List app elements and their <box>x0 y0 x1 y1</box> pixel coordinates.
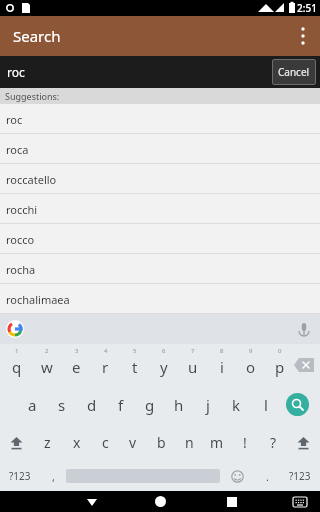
staticText: h <box>174 395 184 415</box>
button[interactable]: 1 <box>2 344 32 385</box>
staticText: g <box>145 395 155 415</box>
button[interactable]: d <box>77 385 106 424</box>
staticText: f <box>118 395 124 415</box>
button[interactable]: 6 <box>149 344 178 385</box>
button[interactable]: More options <box>286 16 320 56</box>
staticText: ! <box>243 433 247 452</box>
staticText: . <box>266 469 269 484</box>
staticText: 1 <box>15 347 19 355</box>
staticText: e <box>72 357 81 377</box>
button[interactable]: rocco <box>0 224 320 254</box>
button[interactable]: s <box>47 385 77 424</box>
button[interactable]: l <box>251 385 280 424</box>
staticText: 6 <box>162 347 166 355</box>
staticText: q <box>12 357 22 377</box>
staticText: r <box>102 357 109 377</box>
staticText: j <box>206 395 210 415</box>
button[interactable]: ?123 <box>280 461 320 491</box>
button[interactable]: 9 <box>236 344 265 385</box>
staticText: , <box>52 469 55 484</box>
button[interactable]: Shift <box>287 424 320 461</box>
staticText: ?123 <box>9 469 31 483</box>
staticText: i <box>220 357 224 377</box>
button[interactable]: 7 <box>178 344 207 385</box>
button[interactable]: 3 <box>62 344 91 385</box>
button[interactable]: rocha <box>0 254 320 284</box>
staticText: o <box>246 357 256 377</box>
staticText: y <box>160 357 168 377</box>
button[interactable]: roca <box>0 134 320 164</box>
button[interactable]: Backspace <box>291 354 317 376</box>
button[interactable]: 8 <box>207 344 236 385</box>
staticText: s <box>58 395 66 415</box>
staticText: rochalimaea <box>6 292 70 307</box>
staticText: Suggestions: <box>5 90 60 102</box>
button[interactable]: 5 <box>120 344 149 385</box>
staticText: z <box>44 433 51 452</box>
staticText: c <box>102 433 109 452</box>
button[interactable]: Keyboard <box>290 492 310 512</box>
staticText: v <box>129 433 137 452</box>
staticText: 2 <box>45 347 49 355</box>
staticText: rocco <box>6 232 35 247</box>
button[interactable]: ! <box>231 424 259 461</box>
staticText: rocchi <box>6 202 38 217</box>
button[interactable]: Google <box>6 320 24 338</box>
button[interactable]: 2 <box>32 344 62 385</box>
button[interactable]: j <box>193 385 222 424</box>
button[interactable]: c <box>91 424 119 461</box>
button[interactable]: 0 <box>265 344 294 385</box>
button[interactable]: v <box>119 424 147 461</box>
button[interactable]: Back <box>80 491 104 512</box>
button[interactable]: roc <box>7 64 25 80</box>
staticText: 9 <box>249 347 253 355</box>
staticText: 4 <box>104 347 108 355</box>
button[interactable]: Home <box>148 491 172 512</box>
button[interactable]: roccatello <box>0 164 320 194</box>
button[interactable]: Voice input <box>296 321 312 337</box>
button[interactable]: n <box>175 424 203 461</box>
button[interactable]: x <box>62 424 91 461</box>
button[interactable]: , <box>40 461 66 491</box>
button[interactable]: a <box>17 385 47 424</box>
button[interactable]: g <box>135 385 164 424</box>
button[interactable]: Shift <box>0 424 33 461</box>
staticText: rocha <box>6 262 36 277</box>
staticText: ?123 <box>289 469 311 483</box>
staticText: p <box>275 357 285 377</box>
staticText: 8 <box>220 347 224 355</box>
staticText: l <box>264 395 268 415</box>
staticText: u <box>188 357 198 377</box>
staticText: roccatello <box>6 172 57 187</box>
button[interactable]: 4 <box>91 344 120 385</box>
staticText: 0 <box>278 347 282 355</box>
staticText: k <box>232 395 241 415</box>
button[interactable]: Search <box>286 393 309 416</box>
button[interactable]: . <box>254 461 280 491</box>
staticText: a <box>28 395 37 415</box>
staticText: 2:51 <box>297 1 317 15</box>
staticText: Cancel <box>278 65 310 79</box>
button[interactable]: ?123 <box>0 461 40 491</box>
button[interactable]: m <box>203 424 231 461</box>
button[interactable]: z <box>33 424 62 461</box>
staticText: x <box>73 433 81 452</box>
staticText: 5 <box>133 347 137 355</box>
button[interactable]: roc <box>0 104 320 134</box>
button[interactable]: rochalimaea <box>0 284 320 314</box>
button[interactable]: f <box>106 385 135 424</box>
button[interactable]: Cancel <box>272 59 316 85</box>
button[interactable]: Recents <box>220 491 244 512</box>
staticText: 3 <box>75 347 79 355</box>
staticText: ? <box>270 433 277 452</box>
button[interactable]: rocchi <box>0 194 320 224</box>
staticText: w <box>41 357 53 377</box>
staticText: roca <box>6 142 29 157</box>
button[interactable]: ? <box>259 424 287 461</box>
button[interactable]: b <box>147 424 175 461</box>
staticText: 7 <box>191 347 195 355</box>
button[interactable]: Emoji <box>220 461 254 491</box>
button[interactable]: h <box>164 385 193 424</box>
button[interactable]: k <box>222 385 251 424</box>
